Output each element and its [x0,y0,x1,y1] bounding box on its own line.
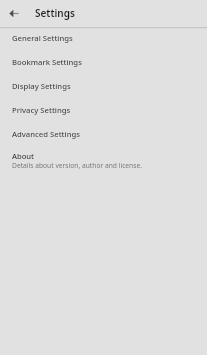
staticText: General Settings [12,33,73,43]
staticText: Settings [35,6,75,20]
button[interactable]: Advanced Settings [0,122,207,146]
button[interactable]: Privacy Settings [0,98,207,122]
button[interactable]: About [0,146,207,178]
staticText: Bookmark Settings [12,57,82,67]
button[interactable]: General Settings [0,26,207,50]
button[interactable]: Bookmark Settings [0,50,207,74]
staticText: Advanced Settings [12,129,80,139]
button[interactable]: Display Settings [0,74,207,98]
staticText: About [12,151,34,161]
button[interactable]: Navigate back [0,0,28,27]
staticText: Privacy Settings [12,105,71,115]
staticText: Display Settings [12,81,71,91]
staticText: Details about version, author and licens… [12,161,143,170]
